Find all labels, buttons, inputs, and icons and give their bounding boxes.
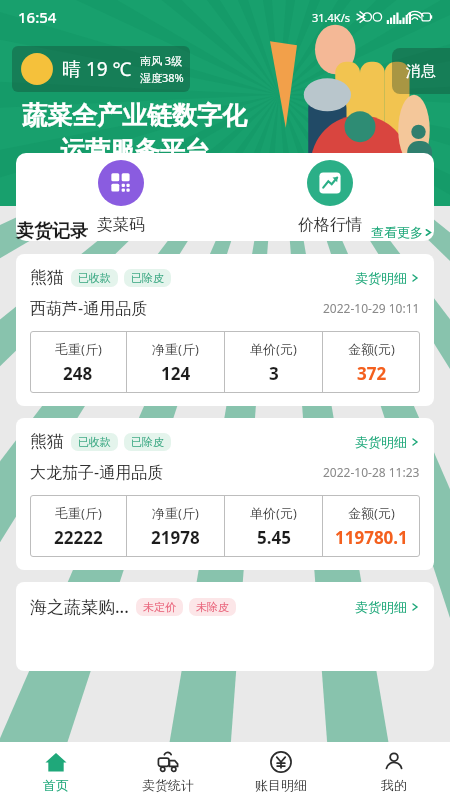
button[interactable]: 卖菜码 (16, 153, 225, 241)
staticText: 湿度38% (140, 70, 184, 85)
staticText: 5.45 (257, 526, 291, 549)
staticText: 248 (63, 362, 93, 385)
button[interactable]: 熊猫 (16, 418, 434, 570)
staticText: 熊猫 (30, 267, 64, 288)
button[interactable]: 首页 (0, 742, 112, 800)
staticText: 124 (161, 362, 191, 385)
staticText: 蔬菜全产业链数字化 (22, 100, 247, 131)
staticText: 已除皮 (131, 271, 164, 285)
staticText: 卖货记录 (16, 220, 88, 243)
button[interactable]: 我的 (337, 742, 450, 800)
staticText: 晴 19 ℃ (62, 56, 132, 82)
staticText: 31.4K/s (312, 10, 350, 25)
staticText: 我的 (381, 777, 407, 793)
staticText: 119780.1 (335, 526, 408, 549)
staticText: 熊猫 (30, 431, 64, 452)
staticText: 卖货明细 (355, 599, 407, 615)
staticText: 卖货统计 (142, 777, 194, 793)
staticText: 卖货明细 (355, 434, 407, 450)
staticText: 已收款 (78, 435, 111, 449)
staticText: 已收款 (78, 271, 111, 285)
staticText: 卖货明细 (355, 270, 407, 286)
staticText: 毛重(斤) (55, 504, 102, 522)
staticText: 消息 (406, 62, 436, 81)
staticText: 未除皮 (196, 600, 229, 614)
staticText: 海之蔬菜购... (30, 595, 129, 618)
staticText: 2022-10-29 10:11 (323, 300, 420, 316)
staticText: 价格行情 (298, 215, 362, 235)
staticText: 16:54 (18, 7, 57, 27)
staticText: 账目明细 (255, 777, 307, 793)
button[interactable]: 账目明细 (224, 742, 337, 800)
staticText: 金额(元) (348, 504, 395, 522)
staticText: 单价(元) (250, 340, 297, 358)
staticText: 首页 (43, 777, 69, 793)
staticText: 已除皮 (131, 435, 164, 449)
button[interactable]: 晴 19 ℃ (18, 46, 184, 92)
staticText: 卖菜码 (97, 215, 145, 235)
staticText: 大龙茄子-通用品质 (30, 461, 164, 483)
button[interactable]: 查看更多 (371, 224, 434, 240)
staticText: 金额(元) (348, 340, 395, 358)
staticText: 372 (357, 362, 387, 385)
staticText: 单价(元) (250, 504, 297, 522)
staticText: 未定价 (143, 600, 176, 614)
staticText: 毛重(斤) (55, 340, 102, 358)
button[interactable]: 卖货明细 (355, 434, 420, 450)
staticText: 3 (269, 362, 279, 385)
staticText: 22222 (54, 526, 103, 549)
button[interactable]: 卖货统计 (112, 742, 224, 800)
staticText: 南风 3级 (140, 53, 183, 68)
staticText: 西葫芦-通用品质 (30, 297, 148, 319)
button[interactable]: 卖货明细 (355, 270, 420, 286)
staticText: 运营服务平台 (60, 135, 210, 166)
staticText: 21978 (151, 526, 200, 549)
button[interactable]: 熊猫 (16, 254, 434, 406)
button[interactable]: 卖货明细 (355, 599, 420, 615)
button[interactable]: 海之蔬菜购... (16, 582, 434, 671)
button[interactable]: 消息 (392, 48, 450, 94)
staticText: 净重(斤) (152, 504, 199, 522)
staticText: 查看更多 (371, 224, 423, 240)
button[interactable]: 价格行情 (225, 153, 434, 241)
staticText: 净重(斤) (152, 340, 199, 358)
staticText: 2022-10-28 11:23 (323, 464, 420, 480)
